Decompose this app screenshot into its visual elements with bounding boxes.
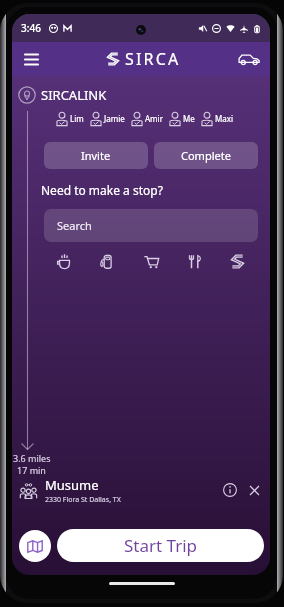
staticText: Search: [57, 218, 92, 233]
button[interactable]: Remove stop: [243, 479, 265, 501]
staticText: Jamie: [104, 113, 125, 124]
button[interactable]: Start Trip: [57, 529, 264, 562]
button[interactable]: Trip info: [219, 479, 241, 501]
staticText: Me: [183, 113, 195, 124]
button[interactable]: SIRCALINK: [18, 84, 107, 106]
staticText: Lim: [70, 113, 84, 124]
button[interactable]: Complete: [154, 142, 258, 169]
staticText: Invite: [81, 148, 111, 163]
staticText: Start Trip: [124, 534, 198, 557]
staticText: Maxi: [215, 113, 234, 124]
button[interactable]: Sirca: [226, 250, 248, 272]
staticText: Musume: [45, 476, 99, 494]
button[interactable]: Menu: [19, 47, 43, 71]
button[interactable]: Invite: [44, 142, 148, 169]
button[interactable]: Restaurants: [183, 250, 205, 272]
staticText: 17 min: [17, 464, 46, 476]
button[interactable]: Map view: [19, 530, 51, 562]
button[interactable]: Coffee: [53, 250, 75, 272]
staticText: 2330 Flora St Dallas, TX: [45, 495, 121, 505]
staticText: SIRCALINK: [41, 86, 107, 104]
button[interactable]: Shopping: [140, 250, 162, 272]
button[interactable]: Search: [44, 209, 258, 242]
button[interactable]: Gas station: [96, 250, 118, 272]
button[interactable]: Vehicle: [237, 47, 261, 71]
staticText: Amir: [145, 113, 163, 124]
staticText: Need to make a stop?: [41, 182, 163, 198]
staticText: 3:46: [21, 21, 41, 35]
staticText: 3.6 miles: [13, 452, 51, 464]
button[interactable]: Musume: [12, 473, 270, 507]
staticText: Complete: [181, 148, 231, 163]
staticText: SIRCA: [125, 48, 181, 70]
